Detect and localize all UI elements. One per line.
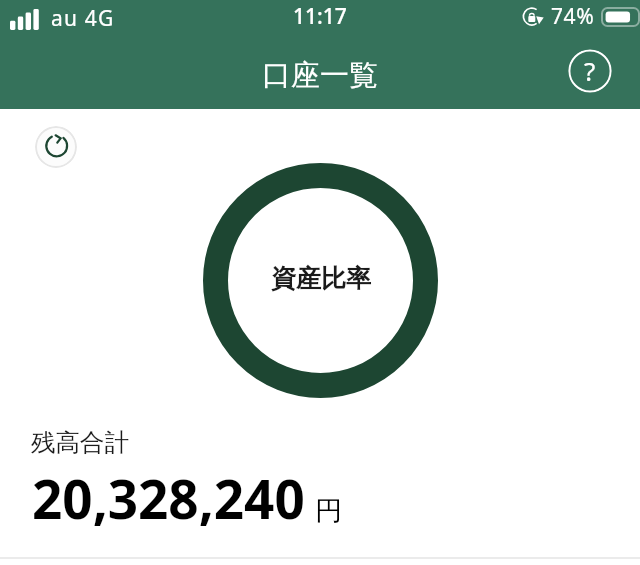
staticText: 残高合計 [31, 427, 129, 458]
staticText: 20,328,240 [32, 462, 305, 534]
staticText: au 4G [51, 4, 115, 33]
staticText: 資産比率 [271, 263, 371, 294]
staticText: 口座一覧 [262, 57, 378, 94]
staticText: 11:17 [293, 2, 347, 31]
staticText: 74% [551, 2, 595, 31]
button[interactable]: Refresh [35, 126, 77, 168]
button[interactable]: Help [568, 49, 612, 93]
staticText: ? [584, 53, 596, 88]
staticText: 円 [315, 494, 342, 528]
